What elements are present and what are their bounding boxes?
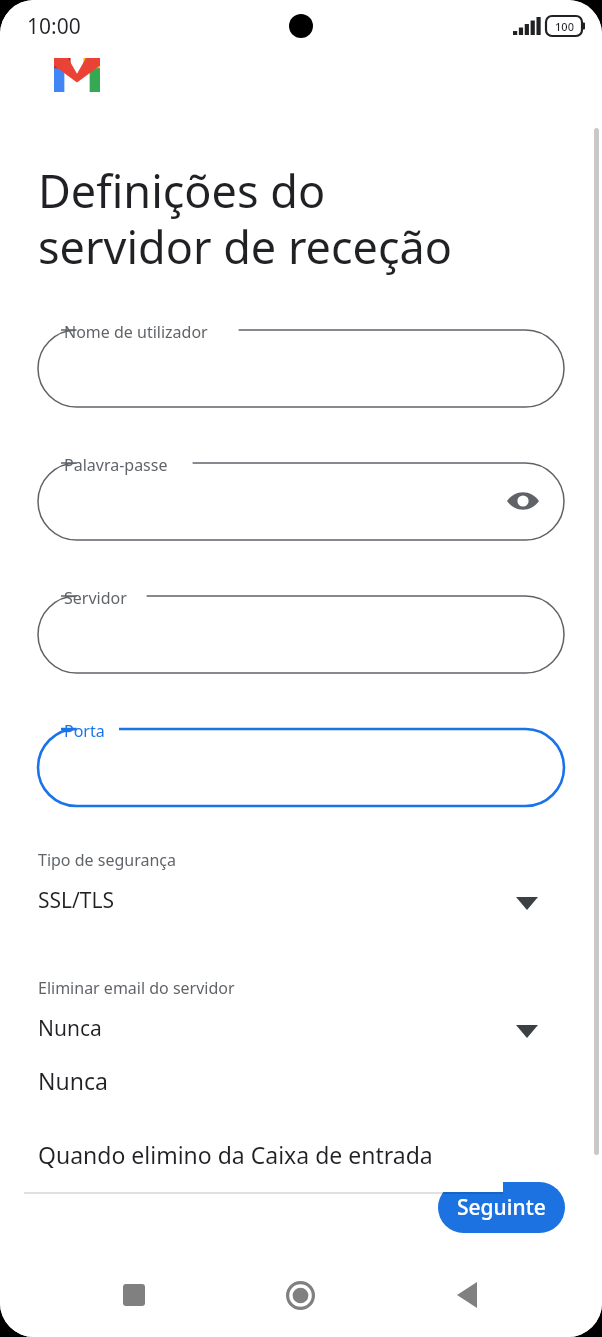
staticText: Eliminar email do servidor [38,977,235,999]
staticText: Nunca [38,1014,102,1043]
button[interactable]: Tipo de segurança [38,844,564,938]
staticText: Seguinte [457,1193,546,1222]
staticText: SSL/TLS [38,886,115,915]
staticText: Tipo de segurança [38,849,176,871]
button[interactable]: Início [268,1263,332,1327]
staticText: Palavra-passe [64,454,168,476]
staticText: 10:00 [27,12,81,41]
button[interactable]: Mostrar palavra-passe [503,481,543,521]
button[interactable]: Seguinte [438,1182,565,1233]
button[interactable]: Eliminar email do servidor [38,972,564,1066]
button[interactable]: Anterior [435,1263,499,1327]
staticText: Definições do servidor de receção [38,160,453,277]
button[interactable]: Porta [38,720,564,806]
staticText: Nunca [38,1065,108,1096]
staticText: 100 [555,19,574,34]
button[interactable]: Quando elimino da Caixa de entrada [24,1117,503,1192]
staticText: Quando elimino da Caixa de entrada [38,1139,433,1170]
button[interactable]: Nome de utilizador [38,321,564,407]
staticText: Servidor [64,587,127,609]
staticText: Nome de utilizador [64,321,208,343]
button[interactable]: Recentes [102,1263,166,1327]
button[interactable]: Servidor [38,587,564,673]
button[interactable]: Nunca [24,1043,503,1117]
button[interactable]: Palavra-passe [38,454,564,540]
staticText: Porta [64,720,105,742]
